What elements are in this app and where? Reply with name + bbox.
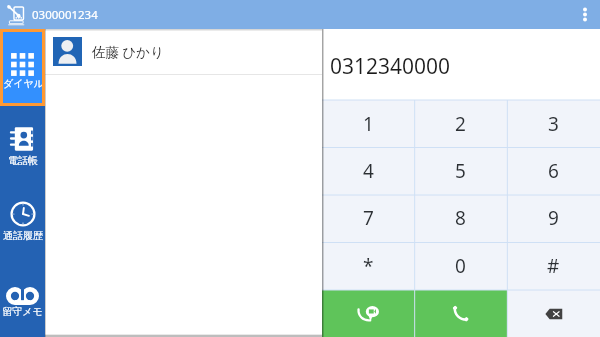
staticText: 2 bbox=[455, 111, 466, 137]
button[interactable]: 佐藤 ひかり bbox=[45, 29, 322, 74]
button[interactable]: 電話帳 bbox=[0, 106, 45, 183]
button[interactable]: More options bbox=[570, 0, 600, 29]
button[interactable]: Video call bbox=[322, 290, 414, 337]
staticText: 電話帳 bbox=[8, 154, 38, 167]
staticText: 9 bbox=[548, 205, 559, 231]
staticText: 7 bbox=[363, 205, 374, 231]
staticText: 4 bbox=[363, 158, 374, 184]
staticText: 0300001234 bbox=[32, 7, 98, 23]
button[interactable]: 6 bbox=[507, 147, 600, 194]
staticText: 1 bbox=[363, 111, 374, 137]
staticText: 6 bbox=[548, 158, 559, 184]
button[interactable]: 1 bbox=[322, 100, 414, 147]
staticText: 0 bbox=[455, 253, 466, 279]
staticText: 0312340000 bbox=[330, 52, 451, 81]
button[interactable]: # bbox=[507, 242, 600, 290]
staticText: 留守メモ bbox=[2, 305, 43, 318]
button[interactable]: 0 bbox=[414, 242, 507, 290]
button[interactable]: * bbox=[322, 242, 414, 290]
staticText: 8 bbox=[455, 205, 466, 231]
button[interactable]: Backspace bbox=[507, 290, 600, 337]
staticText: * bbox=[363, 253, 374, 279]
button[interactable]: 7 bbox=[322, 194, 414, 242]
staticText: # bbox=[547, 253, 560, 279]
button[interactable]: 留守メモ bbox=[0, 260, 45, 337]
button[interactable]: 2 bbox=[414, 100, 507, 147]
staticText: 5 bbox=[455, 158, 466, 184]
button[interactable]: 通話履歴 bbox=[0, 183, 45, 260]
button[interactable]: 4 bbox=[322, 147, 414, 194]
button[interactable]: ダイヤル bbox=[3, 32, 42, 103]
staticText: 通話履歴 bbox=[3, 229, 43, 242]
button[interactable]: Call bbox=[414, 290, 507, 337]
button[interactable]: 3 bbox=[507, 100, 600, 147]
staticText: 佐藤 ひかり bbox=[92, 43, 164, 61]
button[interactable]: 8 bbox=[414, 194, 507, 242]
staticText: ダイヤル bbox=[3, 77, 42, 90]
button[interactable]: 5 bbox=[414, 147, 507, 194]
staticText: 3 bbox=[548, 111, 559, 137]
button[interactable]: 9 bbox=[507, 194, 600, 242]
